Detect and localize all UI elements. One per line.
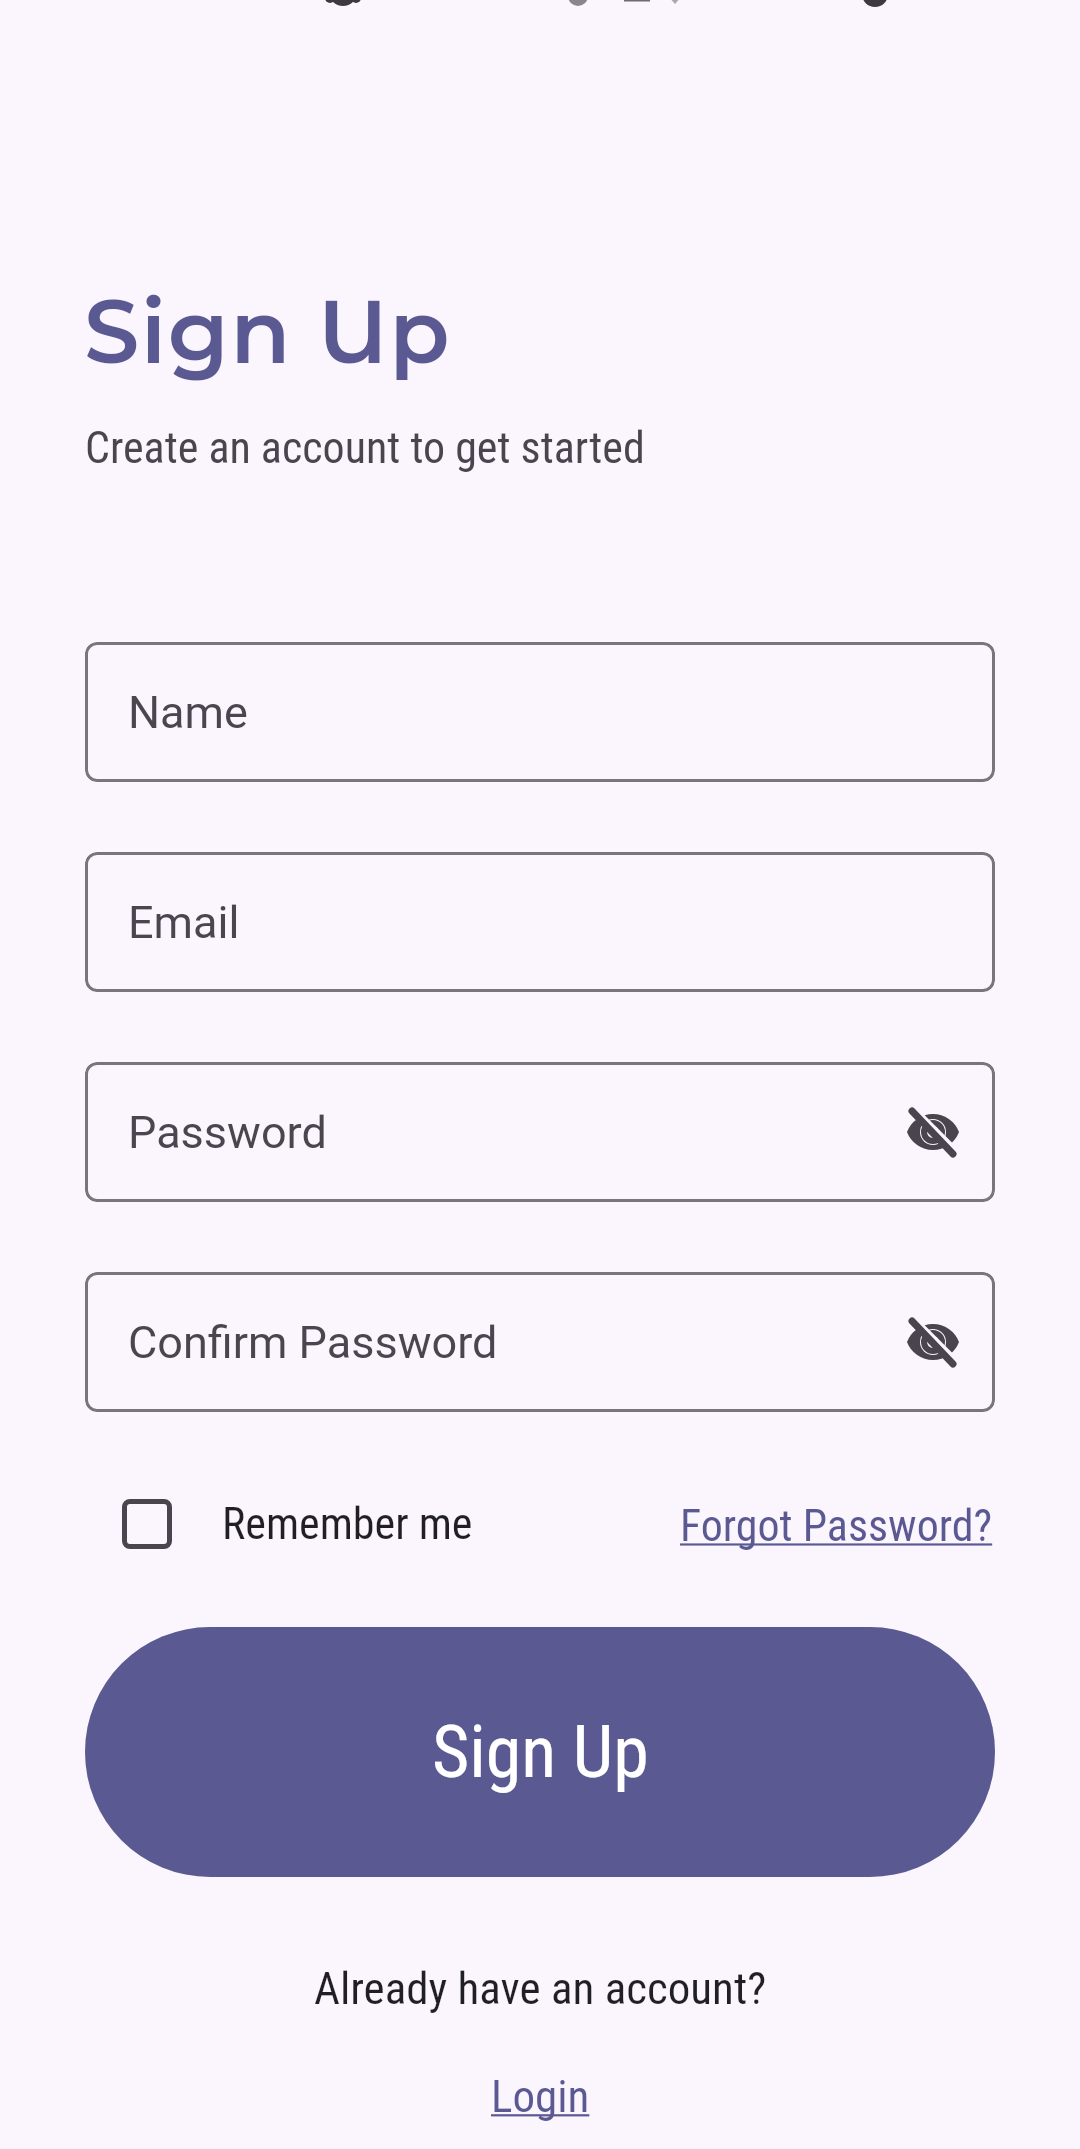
button[interactable]: Confirm Password	[85, 1272, 995, 1412]
staticText: Confirm Password	[128, 1316, 498, 1369]
button[interactable]: Email	[85, 852, 995, 992]
staticText: Create an account to get started	[85, 422, 645, 474]
staticText: Name	[128, 686, 248, 739]
button[interactable]: Login	[491, 2070, 590, 2123]
button[interactable]	[895, 1094, 971, 1170]
staticText: Email	[128, 896, 240, 949]
staticText: Sign Up	[84, 278, 452, 385]
staticText: Password	[128, 1106, 327, 1159]
staticText: Sign Up	[432, 1710, 649, 1794]
staticText: Already have an account?	[314, 1962, 767, 2015]
button[interactable]	[110, 1487, 184, 1561]
button[interactable]	[895, 1304, 971, 1380]
button[interactable]: Name	[85, 642, 995, 782]
staticText: Remember me	[222, 1498, 473, 1550]
button[interactable]: Password	[85, 1062, 995, 1202]
button[interactable]: Forgot Password?	[680, 1500, 993, 1552]
button[interactable]: Sign Up	[85, 1627, 995, 1877]
